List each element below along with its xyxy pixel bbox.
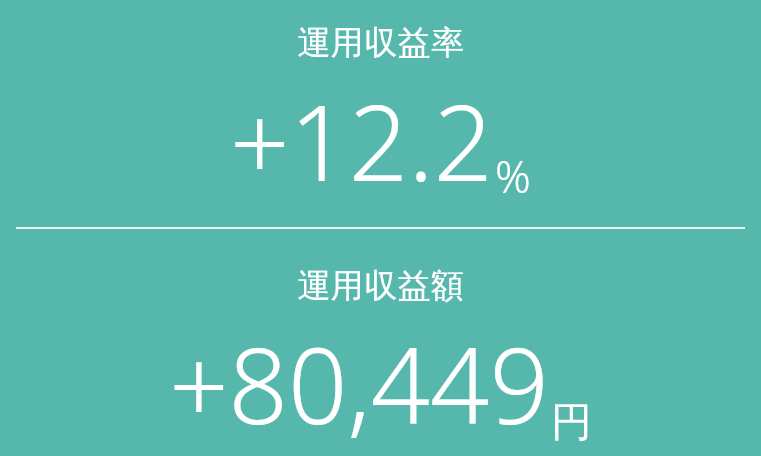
staticText: 運用収益額	[297, 265, 465, 307]
staticText: +12.2	[230, 70, 493, 212]
staticText: 運用収益率	[297, 22, 465, 64]
staticText: %	[495, 146, 531, 206]
button[interactable]: 運用収益率	[0, 0, 761, 227]
staticText: 円	[551, 397, 592, 449]
button[interactable]: 運用収益額	[0, 229, 761, 456]
staticText: +80,449	[169, 313, 549, 455]
